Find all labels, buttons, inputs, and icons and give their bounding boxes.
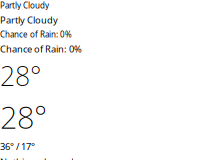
staticText: 36° / 17° — [0, 140, 35, 153]
staticText: Chance of Rain: 0% — [0, 43, 82, 55]
staticText: 28° — [0, 58, 41, 93]
staticText: 28° — [0, 96, 47, 137]
staticText: Partly Cloudy — [0, 14, 58, 26]
staticText: Partly Cloudy — [0, 0, 49, 11]
staticText: Chance of Rain: 0% — [0, 29, 72, 40]
staticText: Nothing planned — [0, 156, 74, 160]
